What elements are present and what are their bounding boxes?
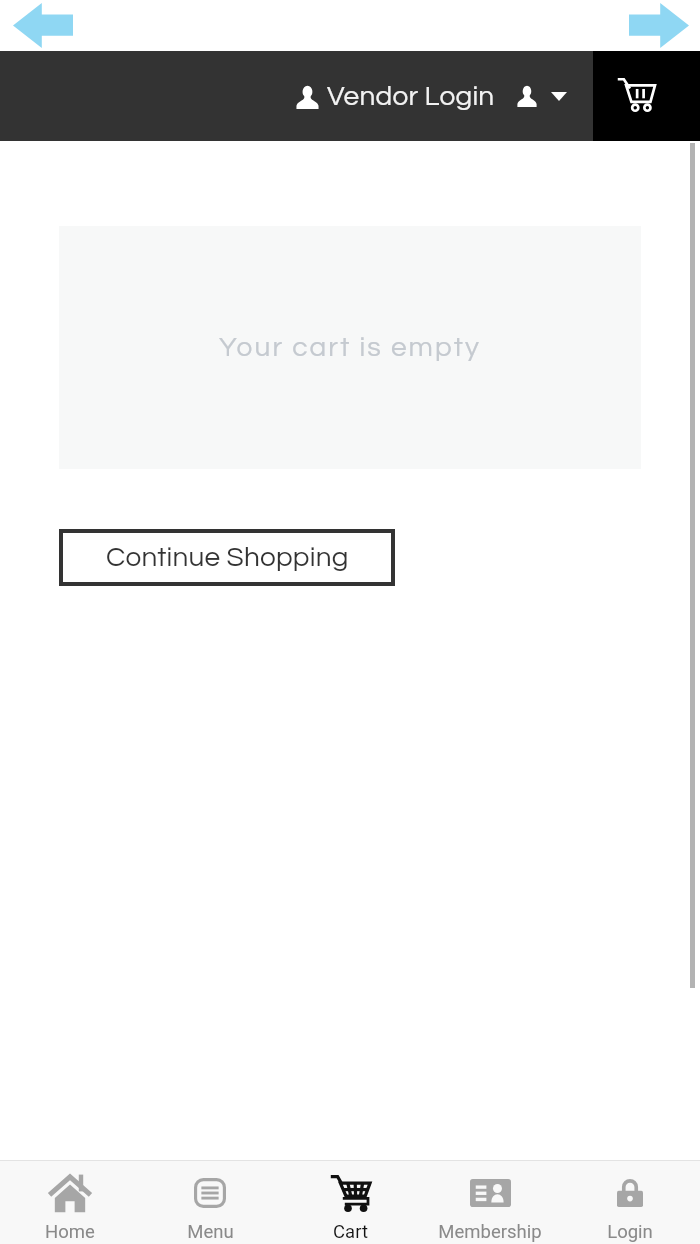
button[interactable]: Home bbox=[0, 1160, 140, 1244]
button[interactable]: Previous bbox=[13, 3, 73, 48]
staticText: Menu bbox=[187, 1221, 234, 1243]
staticText: Membership bbox=[438, 1221, 542, 1243]
button[interactable]: Menu bbox=[140, 1160, 280, 1244]
staticText: Login bbox=[607, 1221, 653, 1243]
button[interactable]: Continue Shopping bbox=[59, 529, 395, 586]
staticText: Vendor Login bbox=[327, 82, 495, 111]
button[interactable]: Next bbox=[629, 3, 689, 48]
button[interactable]: Membership bbox=[420, 1160, 560, 1244]
staticText: Home bbox=[45, 1221, 95, 1243]
button[interactable]: Vendor Login bbox=[296, 82, 495, 111]
staticText: Continue Shopping bbox=[106, 543, 349, 572]
staticText: Your cart is empty bbox=[219, 333, 482, 362]
staticText: Cart bbox=[333, 1221, 368, 1243]
button[interactable]: Login bbox=[560, 1160, 700, 1244]
button[interactable]: Cart bbox=[280, 1160, 420, 1244]
button[interactable]: Account menu bbox=[517, 85, 567, 107]
button[interactable]: Shopping cart bbox=[593, 51, 700, 141]
